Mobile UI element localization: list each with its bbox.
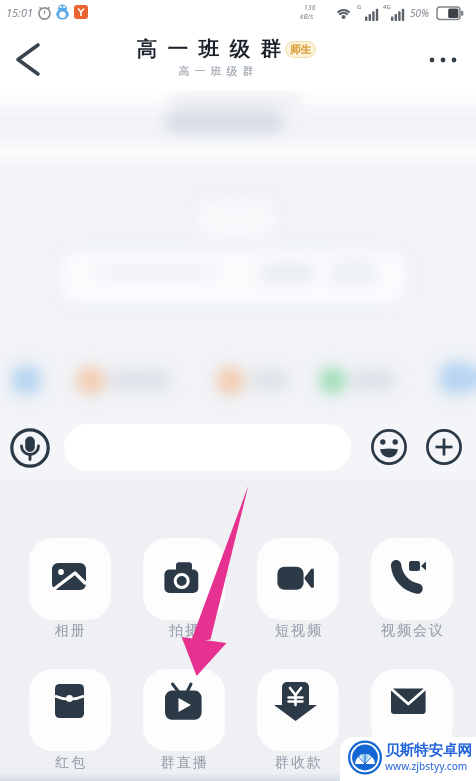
staticText: 拍摄 [168,622,200,640]
staticText: 红包 [54,754,86,772]
button[interactable] [371,429,407,465]
staticText: kB/s [300,12,314,22]
staticText: 短视频 [274,622,322,640]
button[interactable] [257,669,339,751]
staticText: 高一班级群 [176,64,256,78]
button[interactable] [4,36,52,84]
staticText: G [357,3,362,11]
button[interactable] [10,428,50,468]
button[interactable] [257,538,339,620]
staticText: 相册 [54,622,86,640]
button[interactable] [420,42,468,78]
button[interactable] [371,669,453,751]
staticText: 136 [304,3,316,13]
staticText: 4G [383,3,391,11]
button[interactable] [29,538,111,620]
staticText: www.zjbstyy.com [385,759,468,773]
button[interactable] [143,538,225,620]
button[interactable] [143,669,225,751]
staticText: 群直播 [160,754,208,772]
staticText: 高一班级群 [131,36,286,62]
staticText: 贝斯特安卓网 [385,741,472,759]
button[interactable]: 贝斯特安卓网 [340,737,476,781]
staticText: 师生 [290,43,311,56]
button[interactable] [371,538,453,620]
staticText: 15:01 [6,5,34,20]
staticText: 视频会议 [380,622,444,640]
staticText: 群收款 [274,754,322,772]
button[interactable] [29,669,111,751]
button[interactable] [426,429,462,465]
staticText: 50% [410,6,430,20]
